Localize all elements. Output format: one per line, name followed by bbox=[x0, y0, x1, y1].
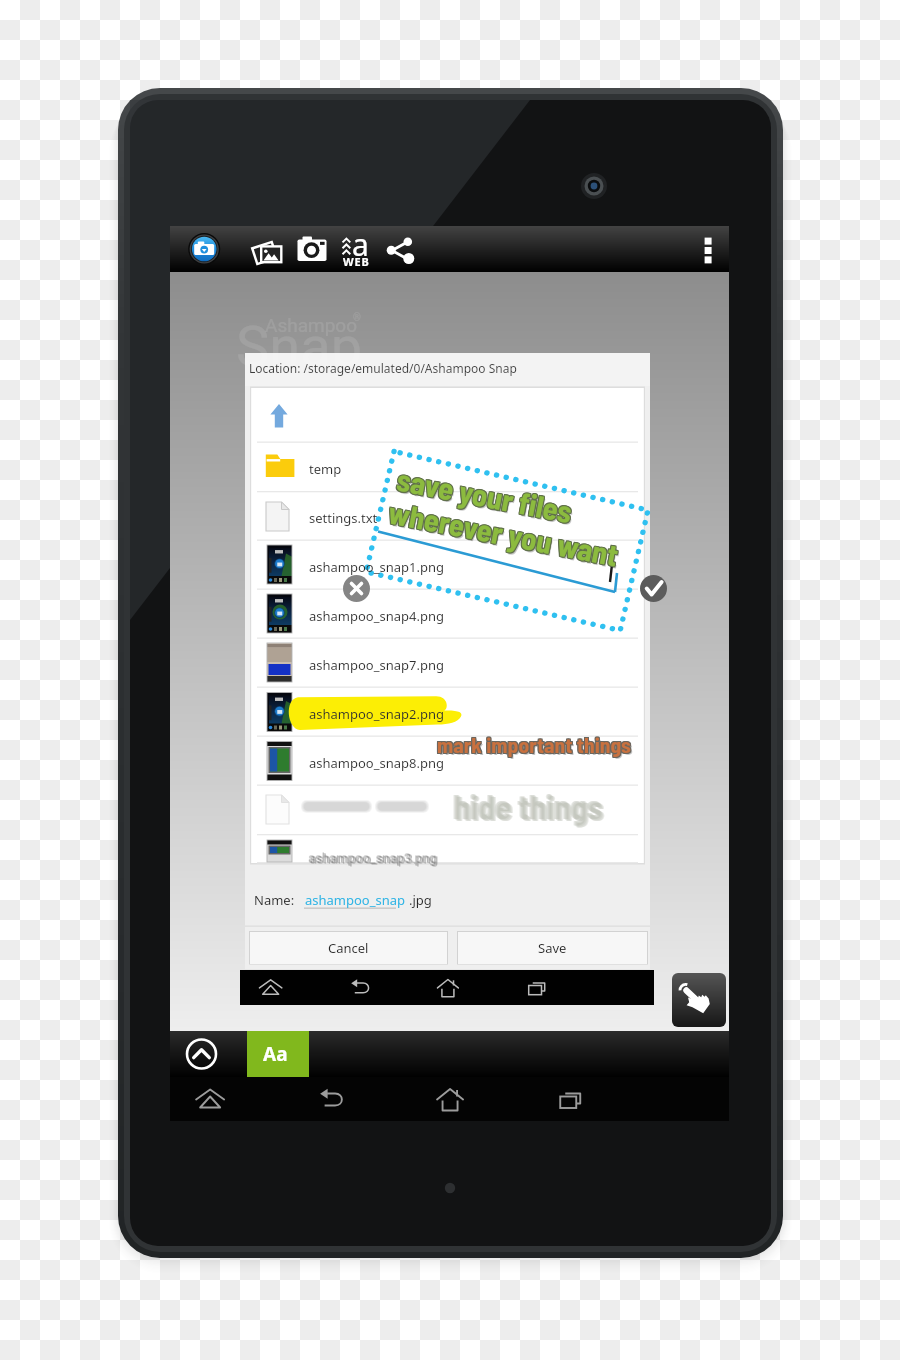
staticText: hide things bbox=[452, 785, 602, 825]
staticText: wherever you want bbox=[385, 493, 621, 573]
staticText: Ashampoo bbox=[265, 314, 358, 336]
staticText: ashampoo_snap7.png bbox=[309, 656, 444, 674]
staticText: save your files bbox=[393, 458, 575, 528]
button[interactable]: Confirm selection bbox=[640, 575, 667, 602]
staticText: hide things bbox=[455, 787, 605, 827]
staticText: WEB bbox=[343, 254, 370, 269]
staticText: Cancel bbox=[328, 939, 369, 957]
staticText: a bbox=[352, 224, 369, 265]
staticText: Save bbox=[538, 939, 567, 957]
staticText: ashampoo_snap3.png bbox=[310, 852, 439, 867]
staticText: Snap bbox=[236, 314, 363, 380]
button[interactable]: Cancel bbox=[250, 932, 447, 964]
staticText: mark important things bbox=[437, 730, 631, 756]
staticText: hide things bbox=[453, 785, 603, 825]
staticText: ashampoo_snap3.png bbox=[308, 850, 437, 865]
staticText: save your files bbox=[395, 461, 577, 530]
staticText: ashampoo_snap3.png bbox=[309, 851, 438, 866]
staticText: mark important things bbox=[437, 731, 631, 757]
staticText: wherever you want bbox=[386, 492, 621, 572]
button[interactable]: Save bbox=[458, 932, 647, 964]
staticText: save your files bbox=[393, 460, 575, 530]
staticText: temp bbox=[309, 460, 342, 478]
staticText: mark important things bbox=[439, 733, 633, 759]
staticText: mark important things bbox=[436, 732, 630, 758]
staticText: Location: /storage/emulated/0/Ashampoo S… bbox=[249, 360, 517, 376]
staticText: ashampoo_snap bbox=[305, 891, 406, 909]
staticText: ashampoo_snap4.png bbox=[309, 607, 444, 625]
staticText: mark important things bbox=[436, 730, 630, 756]
staticText: ashampoo_snap2.png bbox=[309, 705, 444, 723]
staticText: save your files bbox=[394, 459, 576, 528]
staticText: save your files bbox=[394, 461, 576, 530]
staticText: save your files bbox=[393, 459, 575, 529]
staticText: save your files bbox=[395, 459, 577, 529]
staticText: wherever you want bbox=[386, 491, 622, 571]
staticText: mark important things bbox=[438, 732, 632, 758]
staticText: ashampoo_snap8.png bbox=[309, 754, 444, 772]
staticText: hide things bbox=[454, 786, 604, 826]
staticText: wherever you want bbox=[387, 493, 622, 573]
staticText: Aa bbox=[263, 1041, 288, 1067]
staticText: wherever you want bbox=[387, 495, 623, 575]
staticText: wherever you want bbox=[385, 492, 620, 572]
staticText: mark important things bbox=[436, 731, 630, 757]
button[interactable]: Tap gesture bbox=[672, 973, 726, 1027]
staticText: save your files bbox=[394, 460, 576, 529]
button[interactable]: Cancel selection bbox=[343, 575, 370, 602]
staticText: Name: bbox=[254, 891, 295, 909]
staticText: .jpg bbox=[409, 891, 432, 909]
staticText: wherever you want bbox=[385, 491, 621, 571]
staticText: wherever you want bbox=[386, 494, 622, 574]
staticText: mark important things bbox=[438, 731, 632, 757]
staticText: wherever you want bbox=[384, 493, 620, 573]
staticText: mark important things bbox=[438, 730, 632, 756]
staticText: save your files bbox=[396, 462, 577, 532]
staticText: ® bbox=[353, 312, 361, 324]
staticText: settings.txt bbox=[309, 509, 378, 527]
staticText: mark important things bbox=[437, 732, 631, 758]
staticText: wherever you want bbox=[387, 492, 623, 572]
staticText: ashampoo_snap3.png bbox=[310, 851, 439, 866]
staticText: ashampoo_snap3.png bbox=[308, 851, 437, 866]
staticText: save your files bbox=[395, 460, 577, 529]
staticText: ashampoo_snap1.png bbox=[309, 558, 444, 576]
staticText: hide things bbox=[456, 787, 606, 827]
